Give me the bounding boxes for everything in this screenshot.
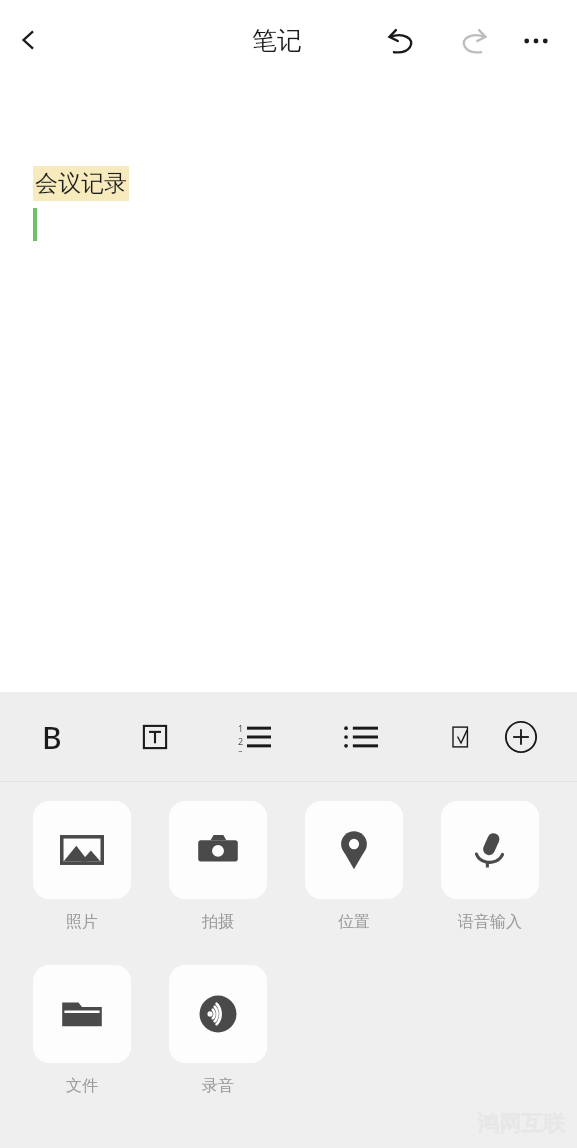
button[interactable]: More options xyxy=(511,16,561,66)
button[interactable]: 文件 xyxy=(33,965,131,1096)
button[interactable]: Checklist xyxy=(437,713,485,761)
staticText: 1 xyxy=(238,722,244,734)
staticText: 3 xyxy=(238,748,244,752)
button[interactable]: Bold xyxy=(28,713,76,761)
staticText: 照片 xyxy=(66,912,98,932)
staticText: 文件 xyxy=(66,1076,98,1096)
button[interactable]: Add attachment xyxy=(497,713,545,761)
staticText: 位置 xyxy=(338,912,370,932)
button[interactable]: Redo xyxy=(449,16,499,66)
button[interactable]: 录音 xyxy=(169,965,267,1096)
button[interactable]: 照片 xyxy=(33,801,131,932)
staticText: 语音输入 xyxy=(458,912,522,932)
staticText: 鸿网互联 xyxy=(477,1110,565,1138)
button[interactable]: 语音输入 xyxy=(441,801,539,932)
button[interactable]: Undo xyxy=(376,16,426,66)
button[interactable]: Back xyxy=(4,16,52,64)
button[interactable]: Bulleted list xyxy=(337,713,385,761)
staticText: 录音 xyxy=(202,1076,234,1096)
button[interactable]: 拍摄 xyxy=(169,801,267,932)
button[interactable]: 位置 xyxy=(305,801,403,932)
staticText: 笔记 xyxy=(252,25,302,56)
button[interactable]: 会议记录 xyxy=(0,80,577,692)
button[interactable]: Text style xyxy=(131,713,179,761)
staticText: 2 xyxy=(238,735,244,747)
button[interactable]: Numbered list xyxy=(234,713,282,761)
staticText: B xyxy=(42,717,62,758)
staticText: 拍摄 xyxy=(202,912,234,932)
button[interactable]: 笔记 xyxy=(252,18,302,62)
staticText: 会议记录 xyxy=(35,169,127,198)
